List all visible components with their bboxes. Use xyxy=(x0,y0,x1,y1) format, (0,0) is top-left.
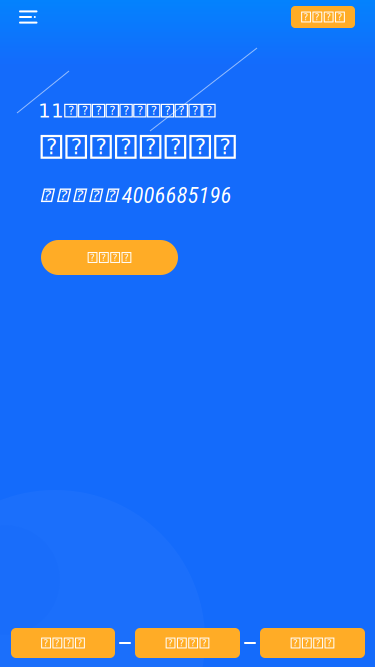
button[interactable]: ? xyxy=(11,628,115,658)
button[interactable]: Menu xyxy=(0,4,47,29)
staticText: ? xyxy=(192,104,198,118)
staticText: ? xyxy=(66,638,71,648)
staticText: 4006685196 xyxy=(121,182,231,209)
staticText: ? xyxy=(123,104,129,118)
staticText: ? xyxy=(60,187,68,204)
staticText: ? xyxy=(108,187,116,204)
staticText: ? xyxy=(170,134,181,159)
staticText: ? xyxy=(109,104,115,118)
staticText: ? xyxy=(90,252,95,263)
staticText: ? xyxy=(337,12,342,22)
staticText: ? xyxy=(71,134,82,159)
staticText: 11 xyxy=(38,99,64,122)
staticText: ? xyxy=(113,252,118,263)
staticText: ? xyxy=(191,638,196,648)
button[interactable]: ? xyxy=(291,6,355,28)
staticText: ? xyxy=(46,134,57,159)
staticText: ? xyxy=(76,187,84,204)
staticText: ? xyxy=(293,638,298,648)
button[interactable]: ? xyxy=(135,628,240,658)
staticText: ? xyxy=(327,638,332,648)
staticText: ? xyxy=(326,12,331,22)
staticText: ? xyxy=(82,104,88,118)
button[interactable]: ? xyxy=(260,628,365,658)
staticText: ? xyxy=(179,638,184,648)
staticText: ? xyxy=(316,638,321,648)
staticText: ? xyxy=(95,104,101,118)
staticText: ? xyxy=(43,638,48,648)
staticText: ? xyxy=(151,104,157,118)
staticText: ? xyxy=(137,104,143,118)
staticText: ? xyxy=(101,252,106,263)
staticText: ? xyxy=(77,638,82,648)
staticText: ? xyxy=(219,134,230,159)
staticText: ? xyxy=(303,12,308,22)
staticText: ? xyxy=(202,638,207,648)
staticText: ? xyxy=(206,104,212,118)
staticText: ? xyxy=(304,638,309,648)
staticText: ? xyxy=(120,134,131,159)
staticText: ? xyxy=(124,252,129,263)
staticText: ? xyxy=(55,638,60,648)
button[interactable]: ? xyxy=(41,240,178,275)
staticText: ? xyxy=(95,134,106,159)
staticText: ? xyxy=(178,104,184,118)
staticText: ? xyxy=(145,134,156,159)
staticText: ? xyxy=(164,104,170,118)
staticText: ? xyxy=(68,104,74,118)
staticText: ? xyxy=(315,12,320,22)
staticText: ? xyxy=(168,638,173,648)
staticText: ? xyxy=(92,187,100,204)
staticText: ? xyxy=(195,134,206,159)
staticText: ? xyxy=(44,187,52,204)
